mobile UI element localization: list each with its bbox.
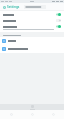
button[interactable]: Toggle on <box>0 25 64 28</box>
button[interactable] <box>0 45 64 53</box>
button[interactable]: Toggle on <box>56 25 61 28</box>
button[interactable]: Toggle off <box>0 19 64 22</box>
staticText: Settings <box>7 5 20 9</box>
button[interactable]: Toggle on <box>56 13 61 16</box>
button[interactable]: Toggle on <box>0 13 64 16</box>
button[interactable] <box>0 37 64 45</box>
button[interactable]: Settings <box>2 4 21 10</box>
button[interactable]: Toggle off <box>56 19 61 22</box>
button[interactable]: Search <box>24 5 46 9</box>
